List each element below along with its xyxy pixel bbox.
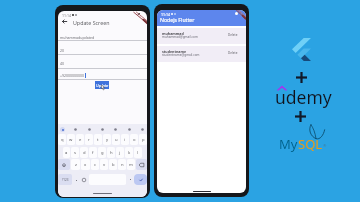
button[interactable]: Period: [127, 174, 133, 185]
staticText: c: [94, 162, 97, 168]
staticText: s: [74, 150, 77, 156]
staticText: j: [119, 150, 121, 156]
button[interactable]: muhammadupdated: [60, 34, 95, 40]
button[interactable]: Google: [60, 127, 65, 132]
staticText: q: [61, 137, 64, 143]
staticText: k: [128, 150, 131, 156]
staticText: z: [75, 162, 77, 168]
button[interactable]: v: [100, 159, 108, 170]
button[interactable]: n: [118, 159, 126, 170]
button[interactable]: o: [130, 134, 138, 145]
staticText: 11:14: [161, 12, 170, 16]
staticText: muhammadupdated: [60, 35, 95, 40]
button[interactable]: ?123: [58, 174, 72, 185]
button[interactable]: Delete: [227, 50, 239, 56]
staticText: ®: [323, 143, 327, 148]
button[interactable]: h: [107, 147, 115, 158]
staticText: g: [101, 150, 104, 156]
staticText: Delete: [228, 51, 238, 55]
button[interactable]: Delete: [227, 32, 239, 38]
staticText: h: [110, 150, 113, 156]
staticText: Update Screen: [73, 19, 110, 26]
staticText: Update: [96, 83, 109, 88]
button[interactable]: a: [63, 147, 70, 158]
button[interactable]: Back: [60, 17, 69, 26]
staticText: +92000000000: [60, 73, 85, 78]
staticText: a: [65, 150, 68, 156]
staticText: 20: [60, 48, 65, 53]
staticText: v: [103, 162, 106, 168]
staticText: l: [137, 150, 139, 156]
button[interactable]: Voice input: [140, 127, 145, 132]
button[interactable]: i: [121, 134, 129, 145]
button[interactable]: +92000000000: [60, 72, 86, 78]
button[interactable]: s: [71, 147, 79, 158]
staticText: n: [121, 162, 124, 168]
staticText: o: [133, 137, 136, 143]
button[interactable]: More: [127, 127, 132, 132]
button[interactable]: k: [125, 147, 133, 158]
staticText: b: [112, 162, 115, 168]
staticText: t: [97, 137, 99, 143]
button[interactable]: r: [85, 134, 93, 145]
staticText: f: [92, 150, 94, 156]
button[interactable]: Enter: [134, 174, 147, 185]
button[interactable]: Emoji: [80, 174, 88, 185]
staticText: y: [106, 137, 109, 143]
button[interactable]: j: [116, 147, 124, 158]
staticText: p: [142, 137, 145, 143]
staticText: i: [124, 137, 126, 143]
button[interactable]: Translate: [87, 127, 92, 132]
button[interactable]: l: [134, 147, 142, 158]
button[interactable]: muhammad: [157, 28, 246, 44]
staticText: SQL: [298, 135, 323, 153]
button[interactable]: 20: [60, 47, 65, 53]
button[interactable]: g: [98, 147, 106, 158]
button[interactable]: w: [67, 134, 75, 145]
staticText: e: [79, 137, 82, 143]
staticText: muhammad@gmail.com: [162, 35, 198, 39]
staticText: u: [115, 137, 118, 143]
staticText: My: [279, 135, 298, 153]
button[interactable]: u: [112, 134, 120, 145]
staticText: Delete: [228, 33, 238, 37]
staticText: x: [84, 162, 87, 168]
button[interactable]: Settings: [113, 127, 118, 132]
button[interactable]: Update: [95, 81, 109, 89]
staticText: m: [129, 162, 133, 168]
button[interactable]: p: [139, 134, 147, 145]
button[interactable]: c: [91, 159, 99, 170]
button[interactable]: z: [71, 159, 80, 170]
staticText: Nodejs Flutter: [160, 16, 195, 23]
button[interactable]: x: [81, 159, 90, 170]
button[interactable]: 40: [60, 60, 65, 66]
button[interactable]: Shift: [58, 159, 70, 170]
staticText: udemy: [275, 85, 332, 109]
button[interactable]: Stickers: [100, 127, 105, 132]
button[interactable]: d: [80, 147, 88, 158]
staticText: 40: [60, 61, 65, 66]
button[interactable]: b: [109, 159, 117, 170]
button[interactable]: GIF: [73, 127, 78, 132]
staticText: muhammad: [162, 31, 184, 36]
button[interactable]: y: [103, 134, 111, 145]
button[interactable]: m: [127, 159, 135, 170]
staticText: r: [88, 137, 90, 143]
button[interactable]: f: [89, 147, 97, 158]
staticText: studentname: [162, 49, 187, 54]
button[interactable]: q: [58, 134, 66, 145]
staticText: d: [83, 150, 86, 156]
button[interactable]: Comma: [73, 174, 79, 185]
staticText: studentname@gmail.com: [162, 53, 200, 57]
staticText: w: [69, 137, 73, 143]
button[interactable]: t: [94, 134, 102, 145]
button[interactable]: e: [76, 134, 84, 145]
staticText: ?123: [62, 178, 69, 182]
staticText: 11:14: [62, 13, 71, 17]
button[interactable]: Backspace: [136, 159, 147, 170]
button[interactable]: studentname: [157, 46, 246, 62]
